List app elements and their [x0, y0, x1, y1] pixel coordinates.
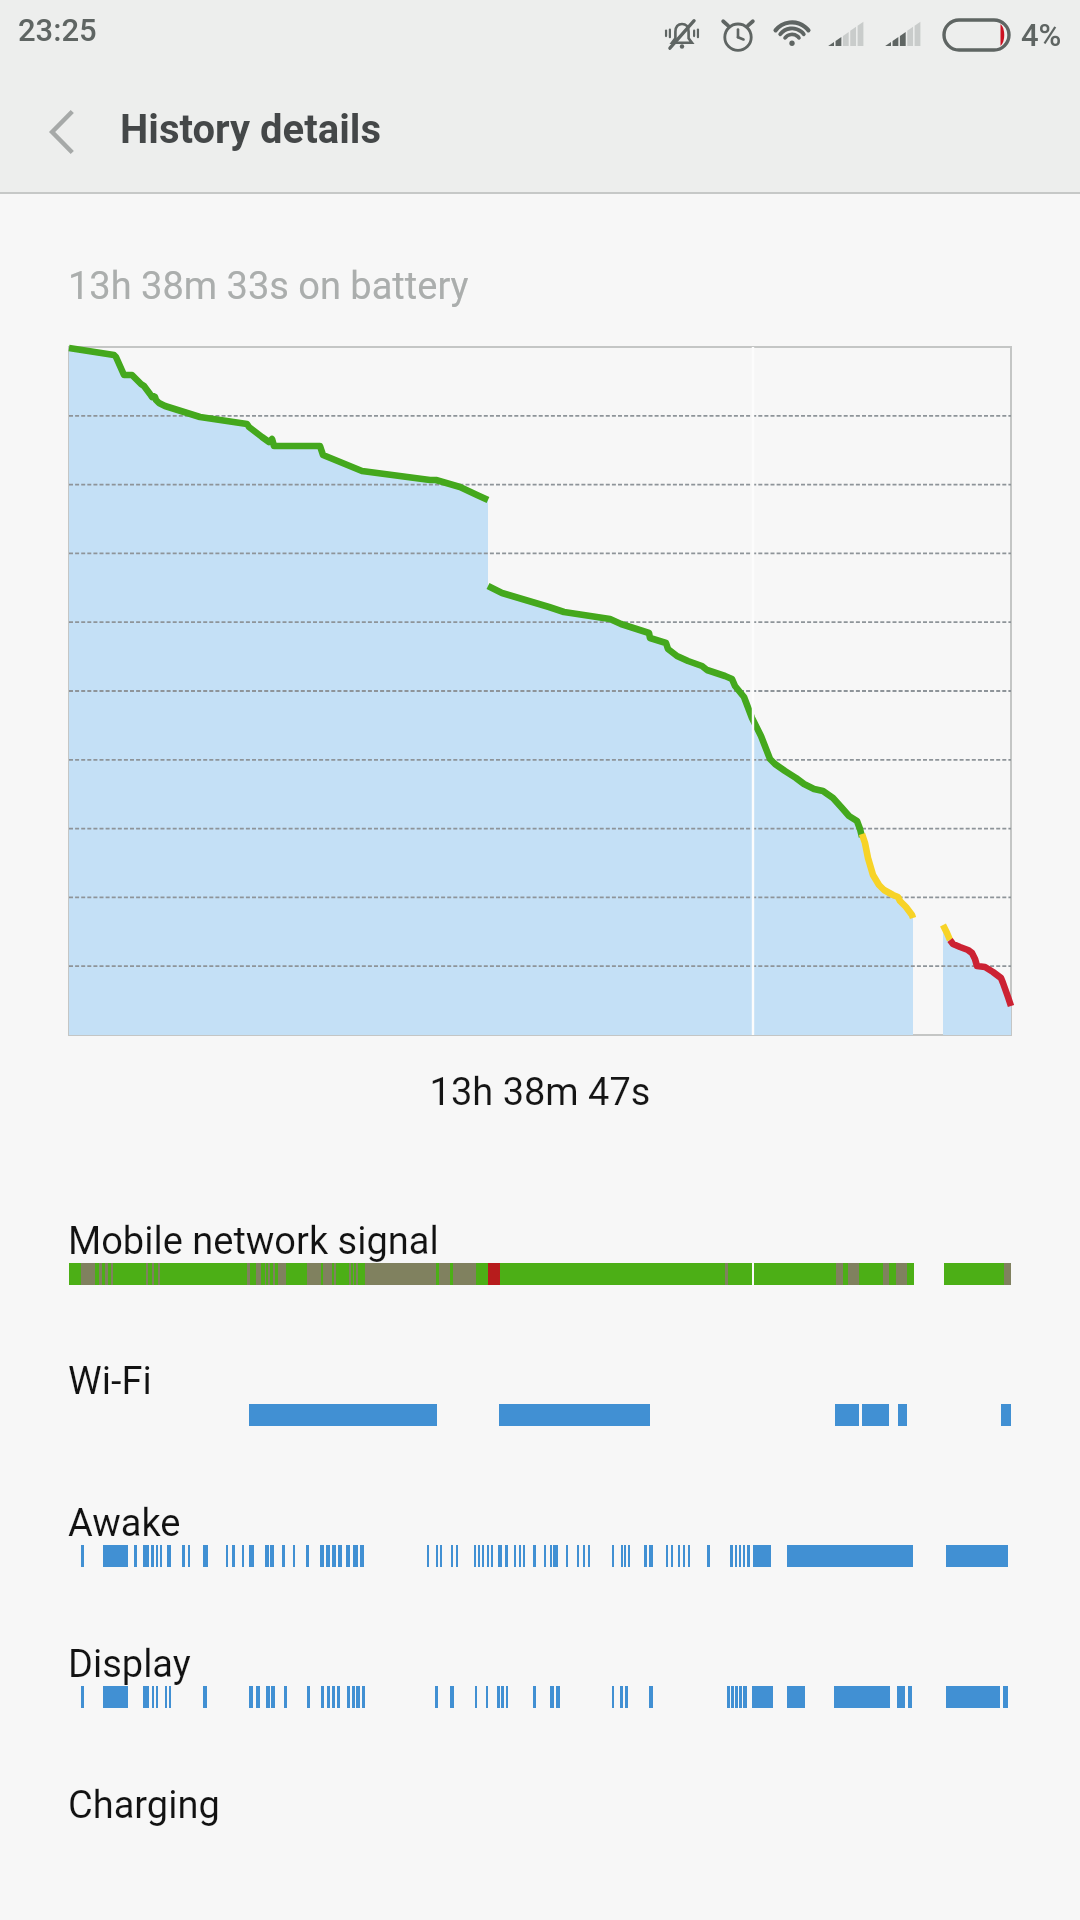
staticText: Charging — [68, 1783, 220, 1828]
staticText: 23:25 — [18, 12, 97, 48]
staticText: 13h 38m 33s on battery — [68, 264, 469, 309]
staticText: Awake — [68, 1501, 181, 1546]
staticText: Mobile network signal — [68, 1219, 439, 1264]
staticText: 13h 38m 47s — [0, 1070, 1080, 1115]
staticText: Display — [68, 1642, 191, 1687]
staticText: 4% — [1021, 17, 1062, 53]
staticText: Wi-Fi — [68, 1359, 152, 1404]
staticText: History details — [120, 106, 381, 153]
button[interactable]: Back — [28, 96, 100, 168]
